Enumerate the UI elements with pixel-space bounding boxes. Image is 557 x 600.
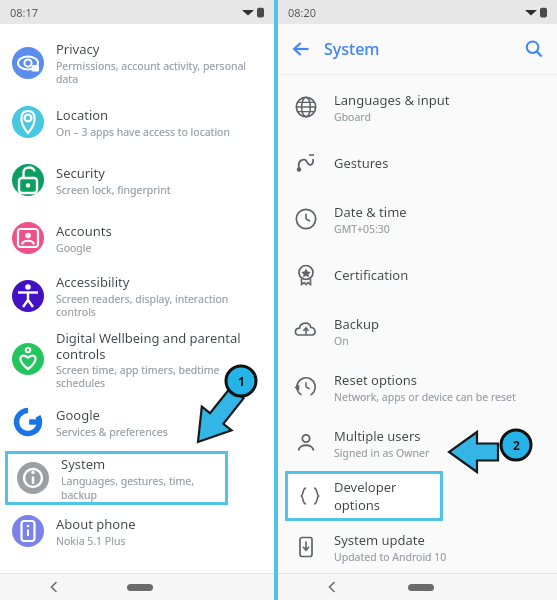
button[interactable]: Reset options: [278, 359, 557, 415]
staticText: Google: [56, 241, 92, 255]
button[interactable]: Google: [0, 393, 274, 451]
staticText: 08:17: [10, 5, 39, 20]
button[interactable]: About phone: [0, 505, 274, 557]
button[interactable]: Accessibility: [0, 267, 274, 325]
staticText: Date & time: [334, 203, 407, 221]
button[interactable]: Date & time: [278, 191, 557, 247]
button[interactable]: Certification: [278, 247, 557, 303]
staticText: System: [61, 455, 106, 473]
button[interactable]: Back: [278, 24, 324, 74]
button[interactable]: Back: [322, 577, 342, 597]
staticText: On: [334, 334, 349, 348]
staticText: About phone: [56, 515, 136, 533]
staticText: Gestures: [334, 154, 389, 172]
button[interactable]: Location: [0, 93, 274, 151]
button[interactable]: Home: [127, 584, 153, 591]
button[interactable]: Privacy: [0, 33, 274, 93]
staticText: Multiple users: [334, 427, 421, 445]
staticText: Google: [56, 406, 100, 424]
staticText: Reset options: [334, 371, 418, 389]
staticText: 1: [238, 373, 245, 389]
button[interactable]: Home: [408, 584, 434, 591]
button[interactable]: System update: [278, 521, 557, 573]
staticText: Languages & input: [334, 91, 450, 109]
staticText: Digital Wellbeing and parental controls: [56, 329, 266, 362]
staticText: Screen lock, fingerprint: [56, 183, 171, 197]
button[interactable]: System: [5, 451, 228, 505]
staticText: Languages, gestures, time, backup: [61, 474, 228, 502]
staticText: Accounts: [56, 222, 112, 240]
staticText: 2: [513, 437, 520, 453]
button[interactable]: Security: [0, 151, 274, 209]
staticText: Network, apps or device can be reset: [334, 390, 516, 404]
staticText: Permissions, account activity, personal …: [56, 59, 266, 86]
button[interactable]: Search: [511, 24, 557, 74]
button[interactable]: Digital Wellbeing and parental controls: [0, 325, 274, 393]
staticText: Backup: [334, 315, 379, 333]
staticText: System: [324, 38, 380, 60]
button[interactable]: Back: [44, 577, 64, 597]
button[interactable]: Languages & input: [278, 79, 557, 135]
staticText: Location: [56, 106, 109, 124]
staticText: Screen readers, display, interaction con…: [56, 292, 266, 319]
staticText: Screen time, app timers, bedtime schedul…: [56, 363, 266, 390]
staticText: Nokia 5.1 Plus: [56, 534, 126, 548]
button[interactable]: Gestures: [278, 135, 557, 191]
staticText: Privacy: [56, 40, 100, 58]
button[interactable]: Backup: [278, 303, 557, 359]
staticText: Gboard: [334, 110, 371, 124]
staticText: System update: [334, 531, 425, 549]
staticText: Security: [56, 164, 105, 182]
staticText: Updated to Android 10: [334, 550, 447, 564]
staticText: Accessibility: [56, 273, 130, 291]
staticText: Certification: [334, 266, 409, 284]
staticText: Developer options: [334, 478, 443, 514]
staticText: On – 3 apps have access to location: [56, 125, 230, 139]
staticText: Signed in as Owner: [334, 446, 430, 460]
button[interactable]: Developer options: [285, 471, 443, 521]
button[interactable]: Multiple users: [278, 415, 557, 471]
staticText: GMT+05:30: [334, 222, 390, 236]
staticText: 08:20: [288, 5, 317, 20]
button[interactable]: Accounts: [0, 209, 274, 267]
staticText: Services & preferences: [56, 425, 168, 439]
